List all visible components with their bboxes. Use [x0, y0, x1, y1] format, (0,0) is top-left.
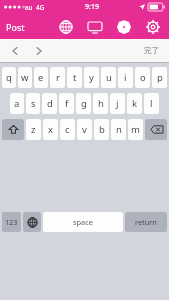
button[interactable]: g [76, 93, 91, 114]
staticText: l [150, 97, 153, 110]
staticText: r [56, 71, 60, 84]
button[interactable]: Settings [142, 16, 164, 38]
button[interactable]: return [125, 212, 167, 232]
staticText: u [106, 71, 112, 84]
staticText: o [140, 71, 146, 84]
staticText: h [98, 97, 104, 110]
button[interactable]: n [111, 119, 126, 140]
staticText: au [25, 3, 33, 12]
button[interactable]: o [135, 67, 150, 88]
staticText: b [99, 123, 105, 136]
staticText: c [65, 123, 70, 136]
staticText: v [82, 123, 87, 136]
button[interactable]: w [18, 67, 32, 88]
staticText: i [124, 71, 127, 84]
button[interactable]: k [127, 93, 142, 114]
button[interactable]: a [10, 93, 24, 114]
button[interactable]: j [110, 93, 125, 114]
button[interactable]: d [42, 93, 57, 114]
staticText: 完了 [144, 46, 160, 56]
staticText: j [116, 97, 119, 110]
button[interactable]: m [128, 119, 143, 140]
button[interactable]: Decorate [113, 16, 135, 38]
button[interactable]: b [94, 119, 109, 140]
staticText: a [14, 97, 20, 110]
staticText: e [38, 71, 44, 84]
staticText: m [131, 123, 140, 136]
button[interactable]: q [2, 67, 16, 88]
staticText: d [47, 97, 53, 110]
button[interactable]: Globe [55, 16, 77, 38]
button[interactable]: u [101, 67, 116, 88]
button[interactable]: r [50, 67, 65, 88]
button[interactable]: z [26, 119, 41, 140]
button[interactable]: x [43, 119, 58, 140]
staticText: 4G [36, 3, 45, 12]
staticText: k [132, 97, 138, 110]
button[interactable]: s [26, 93, 40, 114]
button[interactable]: y [84, 67, 99, 88]
staticText: Post [6, 21, 25, 33]
staticText: z [31, 123, 36, 136]
button[interactable]: e [34, 67, 48, 88]
staticText: space [73, 217, 93, 227]
button[interactable]: Delete [145, 119, 167, 140]
button[interactable]: v [77, 119, 92, 140]
staticText: 123 [5, 217, 18, 227]
button[interactable]: Previous field [6, 42, 23, 59]
button[interactable]: t [67, 67, 82, 88]
button[interactable]: Change keyboard [23, 212, 41, 232]
button[interactable]: 完了 [141, 43, 163, 59]
staticText: s [31, 97, 36, 110]
staticText: f [65, 97, 69, 110]
button[interactable]: Preview [84, 16, 106, 38]
staticText: t [73, 71, 77, 84]
button[interactable]: Post [0, 14, 31, 39]
button[interactable]: f [59, 93, 74, 114]
staticText: n [116, 123, 122, 136]
button[interactable]: Next field [30, 42, 47, 59]
staticText: w [21, 71, 29, 84]
button[interactable]: l [144, 93, 159, 114]
staticText: return [135, 217, 157, 227]
staticText: y [89, 71, 94, 84]
staticText: p [157, 71, 163, 84]
button[interactable]: c [60, 119, 75, 140]
button[interactable]: space [43, 212, 123, 232]
button[interactable]: 123 [2, 212, 21, 232]
button[interactable]: p [152, 67, 167, 88]
button[interactable]: i [118, 67, 133, 88]
button[interactable]: Shift [2, 119, 24, 140]
staticText: q [6, 71, 12, 84]
staticText: x [48, 123, 54, 136]
staticText: g [81, 97, 87, 110]
button[interactable]: h [93, 93, 108, 114]
staticText: 9:19 [85, 2, 99, 12]
